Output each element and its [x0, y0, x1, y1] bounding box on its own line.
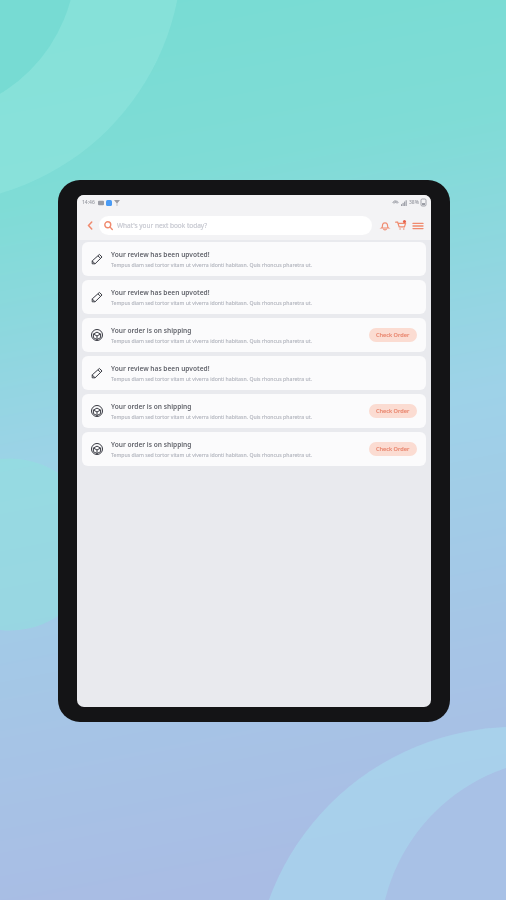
staticText: Check Order [376, 445, 410, 453]
button[interactable]: Check Order [369, 442, 417, 456]
staticText: Tempus diam sed tortor vitam ut viverra … [111, 451, 312, 458]
staticText: Check Order [376, 407, 410, 415]
button[interactable]: Your order is on shipping [82, 318, 426, 352]
staticText: Your review has been upvoted! [111, 288, 210, 297]
staticText: Your order is on shipping [111, 440, 192, 449]
staticText: 38% [409, 199, 419, 206]
button[interactable]: Menu [410, 218, 425, 233]
button[interactable]: Your order is on shipping [82, 394, 426, 428]
button[interactable]: Check Order [369, 404, 417, 418]
staticText: Tempus diam sed tortor vitam ut viverra … [111, 375, 312, 382]
staticText: Tempus diam sed tortor vitam ut viverra … [111, 337, 312, 344]
staticText: Tempus diam sed tortor vitam ut viverra … [111, 261, 312, 268]
button[interactable]: Back [83, 218, 97, 232]
button[interactable]: Your review has been upvoted! [82, 242, 426, 276]
button[interactable]: Your review has been upvoted! [82, 356, 426, 390]
staticText: Your review has been upvoted! [111, 250, 210, 259]
button[interactable]: Check Order [369, 328, 417, 342]
button[interactable]: Your order is on shipping [82, 432, 426, 466]
staticText: Your order is on shipping [111, 402, 192, 411]
staticText: Tempus diam sed tortor vitam ut viverra … [111, 299, 312, 306]
staticText: Tempus diam sed tortor vitam ut viverra … [111, 413, 312, 420]
button[interactable]: Notifications [377, 218, 392, 233]
button[interactable]: Your review has been upvoted! [82, 280, 426, 314]
staticText: What's your next book today? [117, 221, 208, 230]
staticText: 14:46 [82, 199, 95, 206]
staticText: Check Order [376, 331, 410, 339]
staticText: Your review has been upvoted! [111, 364, 210, 373]
button[interactable]: Cart [393, 218, 408, 233]
staticText: Your order is on shipping [111, 326, 192, 335]
button[interactable]: What's your next book today? [99, 216, 372, 235]
